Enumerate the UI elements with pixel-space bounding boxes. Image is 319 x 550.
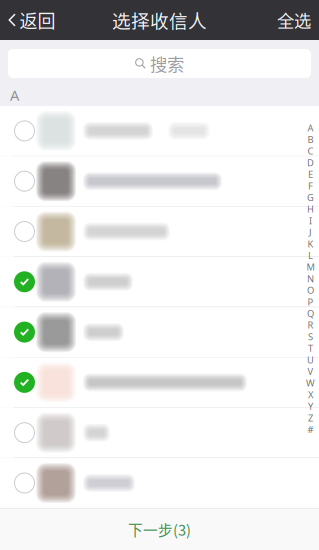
staticText: C xyxy=(307,145,313,157)
staticText: Q xyxy=(307,307,314,320)
staticText: F xyxy=(308,180,313,192)
button[interactable] xyxy=(0,357,319,407)
staticText: B xyxy=(307,133,313,146)
button[interactable]: 全选 xyxy=(265,0,319,40)
staticText: W xyxy=(306,377,315,389)
button[interactable] xyxy=(0,106,319,156)
staticText: D xyxy=(307,156,314,169)
staticText: A xyxy=(307,122,313,134)
staticText: Z xyxy=(308,412,313,424)
staticText: M xyxy=(306,261,314,273)
button[interactable] xyxy=(0,458,319,508)
staticText: I xyxy=(309,214,312,227)
staticText: H xyxy=(307,203,314,215)
staticText: 全选 xyxy=(277,7,311,33)
staticText: O xyxy=(307,284,314,296)
staticText: R xyxy=(307,319,313,331)
button[interactable] xyxy=(0,408,319,458)
staticText: V xyxy=(307,365,313,378)
button[interactable]: 搜索 xyxy=(0,43,319,78)
staticText: K xyxy=(307,238,313,250)
staticText: S xyxy=(308,330,313,343)
staticText: # xyxy=(307,423,313,436)
staticText: E xyxy=(308,168,313,180)
button[interactable]: 返回 xyxy=(0,0,65,40)
staticText: J xyxy=(309,226,312,238)
button[interactable]: 下一步(3) xyxy=(112,512,207,547)
staticText: G xyxy=(307,191,314,204)
button[interactable] xyxy=(0,307,319,357)
staticText: A xyxy=(10,85,19,105)
button[interactable] xyxy=(0,156,319,206)
staticText: T xyxy=(308,342,313,354)
button[interactable] xyxy=(0,207,319,256)
staticText: 返回 xyxy=(19,7,55,33)
staticText: U xyxy=(307,354,314,366)
staticText: 选择收信人 xyxy=(112,6,207,33)
staticText: 搜索 xyxy=(150,51,184,76)
button[interactable] xyxy=(0,257,319,307)
staticText: Y xyxy=(308,400,313,412)
staticText: L xyxy=(308,249,313,262)
staticText: X xyxy=(308,388,313,401)
staticText: 下一步(3) xyxy=(128,519,191,540)
staticText: N xyxy=(307,272,314,285)
staticText: P xyxy=(307,296,313,308)
